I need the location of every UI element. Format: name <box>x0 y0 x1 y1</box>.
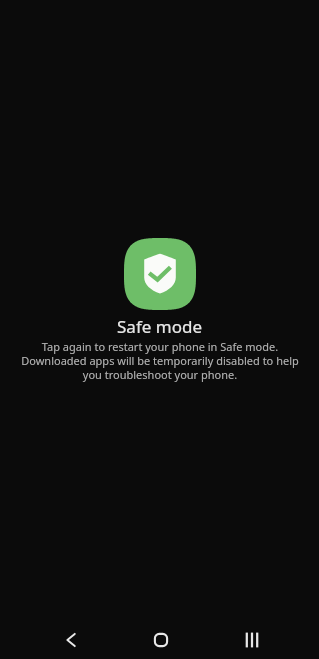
button[interactable]: Back <box>47 616 95 659</box>
button[interactable]: Home <box>137 616 185 659</box>
button[interactable]: Recent apps <box>228 616 276 659</box>
button[interactable]: Safe mode <box>0 0 319 659</box>
staticText: Tap again to restart your phone in Safe … <box>21 339 299 382</box>
staticText: Safe mode <box>117 315 202 338</box>
